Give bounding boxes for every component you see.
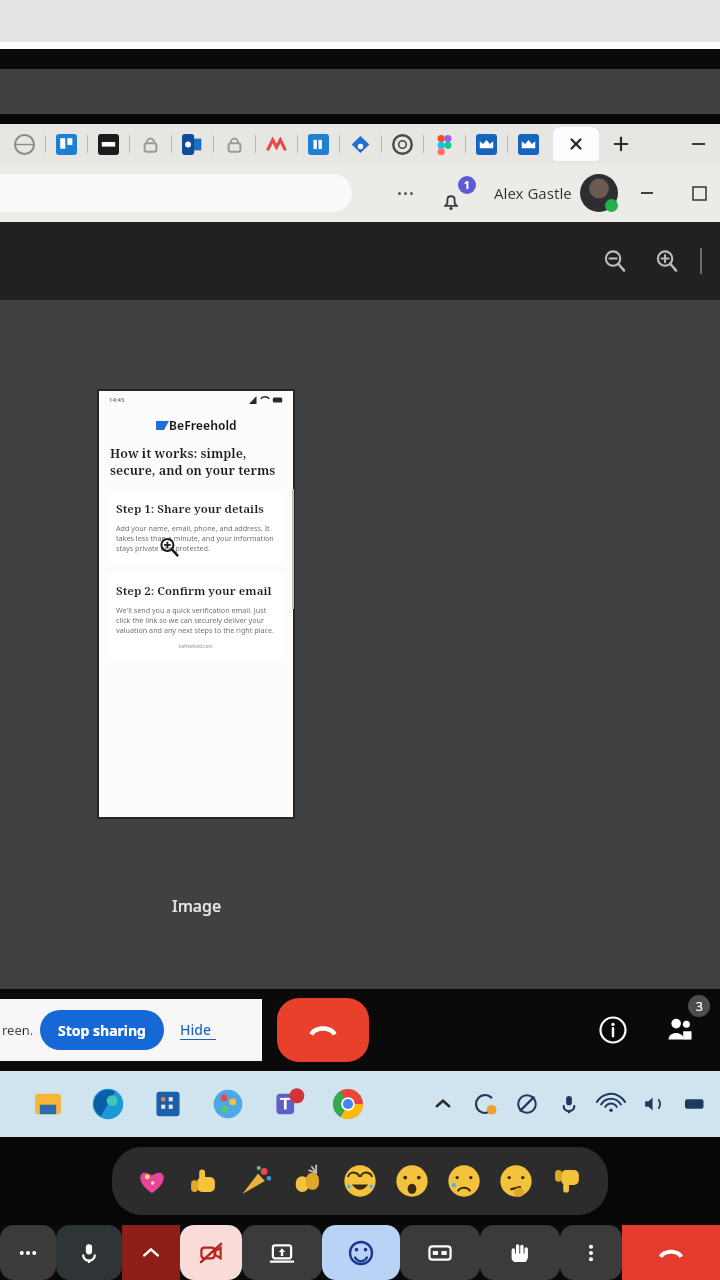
button[interactable]: Share screen	[242, 1225, 322, 1280]
staticText: Step 1: Share your details	[116, 501, 264, 517]
staticText: befreehold.com	[179, 643, 213, 649]
button[interactable]: Chrome	[318, 1074, 378, 1134]
button[interactable]: Camera options	[122, 1225, 180, 1280]
button[interactable]: File Explorer	[18, 1074, 78, 1134]
button[interactable]: Dislike	[542, 1155, 594, 1207]
button[interactable]: Tab	[340, 124, 381, 164]
staticText: How it works: simple, secure, and on you…	[110, 445, 282, 479]
button[interactable]: Stop sharing	[40, 1010, 164, 1050]
button[interactable]: More	[560, 1225, 622, 1280]
button[interactable]: Reactions	[322, 1225, 400, 1280]
button[interactable]: Raise hand	[480, 1225, 560, 1280]
button[interactable]: Heart	[126, 1155, 178, 1207]
button[interactable]: New tab	[599, 124, 643, 164]
button[interactable]: Tab	[298, 124, 339, 164]
button[interactable]: People	[654, 1004, 706, 1056]
button[interactable]: Hide	[176, 1016, 220, 1044]
staticText: Add your name, email, phone, and address…	[116, 523, 276, 553]
button[interactable]: Tab	[88, 124, 129, 164]
button[interactable]: Tab	[130, 124, 171, 164]
button[interactable]: Like	[178, 1155, 230, 1207]
staticText: 3	[696, 998, 703, 1014]
button[interactable]: Battery	[674, 1083, 716, 1125]
button[interactable]: Meeting info	[590, 1007, 636, 1053]
button[interactable]: More	[388, 176, 422, 210]
button[interactable]: Volume	[632, 1083, 674, 1125]
button[interactable]: Laugh	[334, 1155, 386, 1207]
button[interactable]: Sync	[464, 1083, 506, 1125]
staticText: Hide	[180, 1020, 211, 1039]
button[interactable]: Microphone	[56, 1225, 122, 1280]
button[interactable]: Close tab	[553, 127, 599, 161]
button[interactable]: Teams	[258, 1074, 318, 1134]
button[interactable]: Notifications	[440, 173, 480, 213]
button[interactable]: Step 1: Share your details	[106, 491, 286, 563]
button[interactable]: Hang up	[622, 1225, 720, 1280]
button[interactable]: Celebrate	[230, 1155, 282, 1207]
button[interactable]: Tab	[466, 124, 507, 164]
button[interactable]: Surprised	[386, 1155, 438, 1207]
staticText: 14:45	[109, 396, 125, 404]
staticText: Stop sharing	[58, 1021, 146, 1040]
staticText: Image	[172, 895, 222, 917]
button[interactable]: Edge	[78, 1074, 138, 1134]
button[interactable]: More options	[0, 1225, 56, 1280]
button[interactable]: Paint	[198, 1074, 258, 1134]
button[interactable]: Tab	[4, 124, 45, 164]
staticText: BeFreehold	[169, 417, 237, 433]
button[interactable]: Maximize window	[682, 176, 716, 210]
staticText: Alex Gastle	[494, 183, 572, 203]
staticText: 1	[464, 178, 470, 192]
button[interactable]: Tab	[382, 124, 423, 164]
button[interactable]: Microphone	[548, 1083, 590, 1125]
button[interactable]: Tab	[256, 124, 297, 164]
button[interactable]: Account	[580, 174, 618, 212]
button[interactable]: Do not disturb	[506, 1083, 548, 1125]
button[interactable]: Minimize window	[630, 176, 664, 210]
button[interactable]: Camera off	[180, 1225, 242, 1280]
button[interactable]: Show hidden icons	[422, 1083, 464, 1125]
staticText: Step 2: Confirm your email	[116, 583, 272, 599]
button[interactable]: Sad	[438, 1155, 490, 1207]
button[interactable]: Tab	[46, 124, 87, 164]
button[interactable]: Applause	[282, 1155, 334, 1207]
button[interactable]: Thinking	[490, 1155, 542, 1207]
button[interactable]: Tab	[424, 124, 465, 164]
staticText: reen.	[2, 1021, 34, 1039]
button[interactable]: Tab	[172, 124, 213, 164]
button[interactable]: Minimize	[676, 124, 720, 164]
button[interactable]: Tab	[508, 124, 549, 164]
button[interactable]: Zoom out	[598, 244, 632, 278]
button[interactable]: Leave call	[277, 998, 369, 1062]
button[interactable]: Wi-Fi	[590, 1083, 632, 1125]
button[interactable]: Store	[138, 1074, 198, 1134]
staticText: We'll send you a quick verification emai…	[116, 605, 276, 635]
button[interactable]: Live captions	[400, 1225, 480, 1280]
button[interactable]: Tab	[214, 124, 255, 164]
button[interactable]: Zoom in	[650, 244, 684, 278]
button[interactable]: Step 2: Confirm your email	[106, 573, 286, 659]
